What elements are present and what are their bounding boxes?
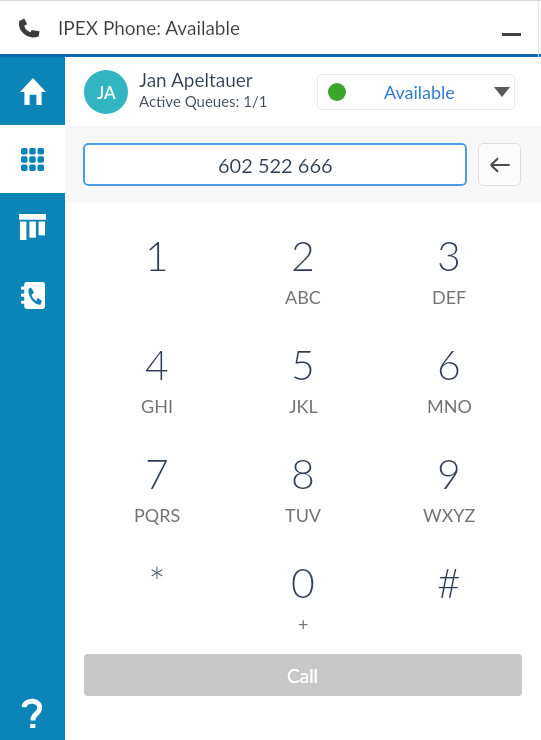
staticText: 7: [145, 449, 169, 498]
staticText: +: [298, 613, 309, 635]
staticText: TUV: [285, 504, 322, 526]
staticText: WXYZ: [423, 504, 476, 526]
button[interactable]: 6: [376, 340, 522, 449]
staticText: 8: [291, 449, 315, 498]
staticText: 602 522 666: [218, 153, 333, 177]
button[interactable]: Contacts: [0, 261, 65, 329]
staticText: 4: [145, 340, 169, 389]
button[interactable]: *: [84, 558, 230, 667]
staticText: Call: [287, 664, 319, 687]
button[interactable]: 1: [84, 231, 230, 340]
button[interactable]: 602 522 666: [83, 143, 467, 186]
staticText: IPEX Phone: Available: [58, 16, 241, 39]
staticText: Available: [384, 81, 455, 103]
button[interactable]: 2: [230, 231, 376, 340]
staticText: 1: [145, 231, 169, 280]
button[interactable]: 5: [230, 340, 376, 449]
staticText: PQRS: [134, 504, 181, 526]
button[interactable]: Available: [317, 74, 515, 110]
button[interactable]: 3: [376, 231, 522, 340]
staticText: 0: [291, 558, 315, 607]
staticText: Jan Apeltauer: [139, 68, 253, 91]
staticText: JKL: [289, 395, 318, 417]
staticText: 9: [437, 449, 461, 498]
button[interactable]: Minimize: [489, 0, 534, 54]
button[interactable]: Help: [0, 672, 65, 740]
button[interactable]: 8: [230, 449, 376, 558]
staticText: Active Queues: 1/1: [139, 92, 268, 110]
button[interactable]: 4: [84, 340, 230, 449]
button[interactable]: Call: [84, 654, 522, 696]
button[interactable]: 7: [84, 449, 230, 558]
button[interactable]: 0: [230, 558, 376, 667]
staticText: 5: [291, 340, 315, 389]
staticText: *: [148, 558, 166, 607]
button[interactable]: Backspace: [478, 143, 521, 186]
staticText: 2: [291, 231, 315, 280]
staticText: 6: [437, 340, 461, 389]
button[interactable]: Dialpad: [0, 125, 65, 193]
staticText: #: [437, 558, 461, 607]
button[interactable]: Reports: [0, 193, 65, 261]
button[interactable]: 9: [376, 449, 522, 558]
staticText: GHI: [141, 395, 173, 417]
staticText: ABC: [285, 286, 321, 308]
staticText: JA: [97, 82, 116, 102]
staticText: DEF: [432, 286, 467, 308]
button[interactable]: Home: [0, 57, 65, 125]
button[interactable]: #: [376, 558, 522, 667]
staticText: 3: [437, 231, 461, 280]
staticText: MNO: [427, 395, 472, 417]
